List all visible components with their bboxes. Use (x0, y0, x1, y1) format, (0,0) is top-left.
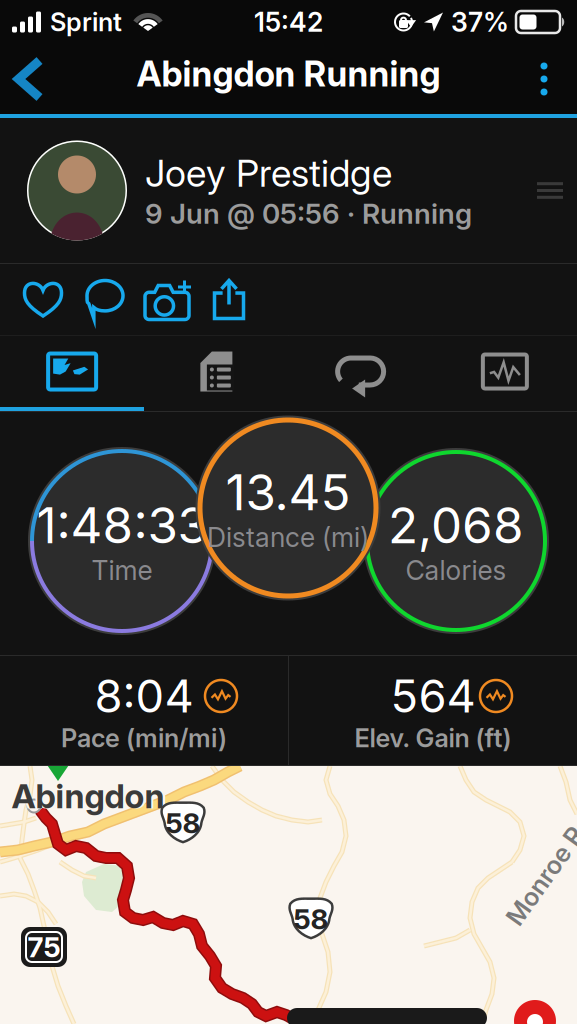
button[interactable]: Laps (288, 335, 433, 407)
staticText: Pace (min/mi) (61, 723, 227, 753)
button[interactable]: Back (0, 43, 58, 115)
staticText: 8:04 (94, 669, 193, 723)
staticText: 15:42 (254, 6, 323, 38)
staticText: 37% (451, 6, 509, 38)
button[interactable]: Details (144, 335, 288, 407)
button[interactable]: Like (12, 263, 74, 335)
staticText: 13.45 (225, 462, 350, 522)
button[interactable]: Graphs (433, 335, 577, 407)
button[interactable]: Share (198, 263, 260, 335)
staticText: Abingdon Running (136, 53, 440, 95)
staticText: 1:48:33 (36, 495, 207, 555)
staticText: 2,068 (388, 495, 524, 555)
staticText: Joey Prestidge (145, 150, 392, 196)
button[interactable]: Map (0, 335, 144, 407)
staticText: Sprint (50, 7, 122, 37)
staticText: Distance (mi) (207, 521, 369, 553)
staticText: Calories (405, 554, 506, 586)
button[interactable]: Add photo (136, 263, 198, 335)
staticText: 564 (390, 669, 475, 723)
staticText: Monroe R (488, 861, 577, 891)
staticText: 9 Jun @ 05:56 · Running (145, 197, 472, 230)
button[interactable]: More options (511, 43, 577, 115)
button[interactable]: Comment (74, 263, 136, 335)
staticText: Abingdon (8, 775, 167, 817)
staticText: Abingdon (11, 776, 164, 816)
button[interactable]: Activity settings (523, 160, 577, 220)
staticText: Time (91, 554, 152, 586)
staticText: 58 (165, 806, 200, 840)
staticText: 75 (27, 930, 60, 964)
staticText: 58 (293, 902, 328, 936)
staticText: Elev. Gain (ft) (354, 723, 511, 753)
